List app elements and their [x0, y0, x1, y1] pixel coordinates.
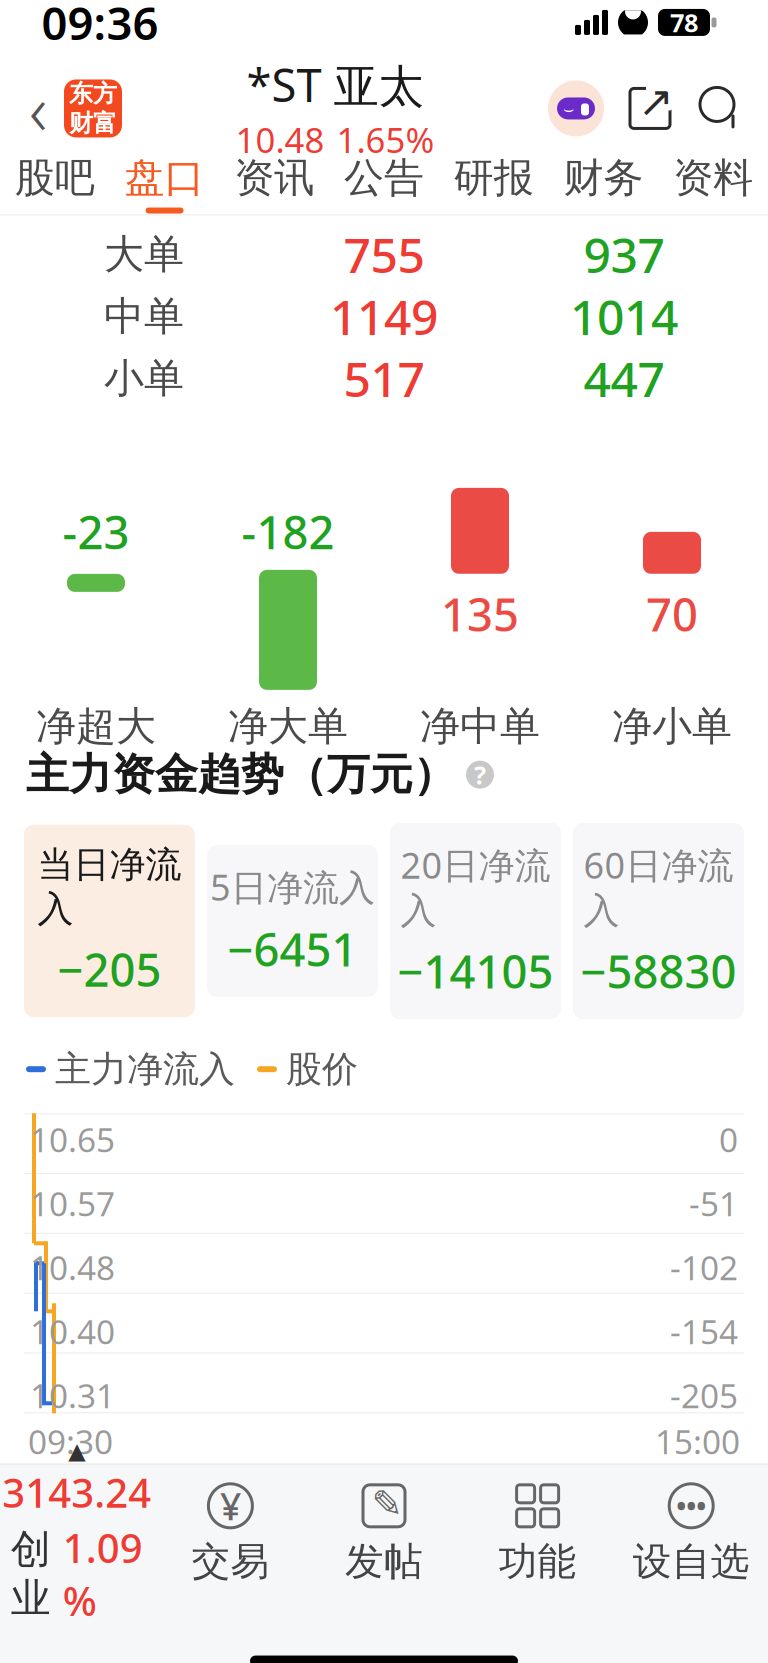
- staticText: −58830: [580, 941, 736, 1001]
- staticText: 09:36: [41, 0, 158, 52]
- staticText: 517: [343, 347, 424, 410]
- staticText: 净小单: [612, 702, 732, 751]
- staticText: 净大单: [228, 702, 348, 751]
- button[interactable]: Help: [466, 758, 494, 791]
- staticText: 资料: [673, 153, 753, 202]
- button[interactable]: 20日净流入: [390, 823, 561, 1019]
- button[interactable]: Share: [626, 84, 674, 132]
- button[interactable]: AI Assistant: [548, 80, 604, 136]
- staticText: −205: [57, 939, 161, 999]
- button[interactable]: 股吧: [0, 152, 110, 214]
- staticText: 中单: [104, 292, 184, 341]
- staticText: 70: [646, 584, 698, 644]
- staticText: 1.09%: [63, 1521, 143, 1627]
- staticText: 10.57: [30, 1181, 115, 1226]
- staticText: 10.48: [235, 117, 324, 163]
- staticText: 70: [646, 502, 698, 562]
- staticText: 股价: [286, 1047, 358, 1091]
- staticText: 1149: [330, 285, 438, 348]
- staticText: *ST 亚太: [246, 54, 423, 115]
- button[interactable]: 设自选: [614, 1480, 768, 1585]
- staticText: ⌣: [563, 101, 574, 118]
- staticText: ▲: [68, 1438, 85, 1464]
- staticText: 主力资金趋势（万元）: [26, 748, 456, 801]
- staticText: -102: [670, 1245, 738, 1290]
- button[interactable]: 5日净流入: [207, 845, 378, 997]
- button[interactable]: Back: [12, 78, 64, 138]
- staticText: 净超大: [36, 702, 156, 751]
- staticText: 大单: [104, 230, 184, 279]
- button[interactable]: 公告: [329, 152, 439, 214]
- button[interactable]: 资料: [658, 152, 768, 214]
- button[interactable]: 研报: [439, 152, 549, 214]
- staticText: 发帖: [345, 1538, 423, 1585]
- staticText: 78: [670, 6, 698, 39]
- staticText: 447: [583, 347, 664, 410]
- staticText: 09:30: [28, 1419, 113, 1464]
- staticText: 135: [441, 458, 519, 518]
- button[interactable]: 功能: [461, 1480, 614, 1585]
- staticText: 5日净流入: [210, 863, 375, 911]
- staticText: 盘口: [125, 153, 205, 202]
- staticText: -154: [670, 1309, 738, 1354]
- button[interactable]: Search: [696, 84, 744, 132]
- staticText: 755: [343, 223, 424, 286]
- staticText: ✎: [371, 1483, 402, 1525]
- button[interactable]: 当日净流入: [24, 825, 195, 1017]
- staticText: −6451: [227, 919, 357, 979]
- staticText: ↗: [638, 77, 674, 126]
- staticText: -51: [689, 1181, 738, 1226]
- button[interactable]: ▲: [0, 1438, 154, 1627]
- staticText: 小单: [104, 354, 184, 403]
- staticText: 主力净流入: [55, 1047, 235, 1091]
- staticText: 135: [441, 584, 519, 644]
- staticText: ?: [474, 758, 486, 791]
- staticText: 股吧: [15, 153, 95, 202]
- staticText: −14105: [397, 941, 553, 1001]
- staticText: 东方: [69, 79, 117, 108]
- staticText: 0: [719, 1117, 738, 1162]
- staticText: -182: [241, 502, 334, 562]
- staticText: -205: [670, 1373, 738, 1418]
- button[interactable]: 60日净流入: [573, 823, 744, 1019]
- staticText: •••: [676, 1488, 706, 1523]
- staticText: -23: [62, 502, 129, 562]
- button[interactable]: 财务: [549, 152, 658, 214]
- button[interactable]: 发帖: [307, 1480, 461, 1585]
- staticText: 1014: [570, 285, 678, 348]
- staticText: 60日净流入: [583, 841, 733, 933]
- staticText: 财务: [563, 153, 643, 202]
- staticText: 创业: [11, 1525, 51, 1623]
- button[interactable]: 东方财富 Home: [64, 79, 122, 137]
- staticText: 15:00: [655, 1419, 740, 1464]
- staticText: 10.31: [30, 1373, 115, 1418]
- staticText: 3143.24: [2, 1466, 151, 1519]
- staticText: ¥: [220, 1481, 241, 1531]
- staticText: 公告: [344, 153, 424, 202]
- staticText: 功能: [499, 1538, 577, 1585]
- staticText: 937: [583, 223, 664, 286]
- staticText: 交易: [191, 1538, 269, 1585]
- staticText: 当日净流入: [37, 843, 181, 931]
- button[interactable]: 资讯: [219, 152, 329, 214]
- staticText: 研报: [454, 153, 534, 202]
- staticText: ‹: [29, 62, 47, 154]
- staticText: 10.65: [30, 1117, 115, 1162]
- button[interactable]: 交易: [154, 1480, 307, 1585]
- staticText: 财富: [69, 108, 117, 138]
- staticText: 净中单: [420, 702, 540, 751]
- button[interactable]: 盘口: [110, 152, 219, 214]
- staticText: 资讯: [234, 153, 314, 202]
- staticText: 10.40: [30, 1309, 115, 1354]
- staticText: 1.65%: [336, 117, 434, 163]
- staticText: 设自选: [633, 1538, 750, 1585]
- staticText: 20日净流入: [400, 841, 550, 933]
- staticText: 10.48: [30, 1245, 115, 1290]
